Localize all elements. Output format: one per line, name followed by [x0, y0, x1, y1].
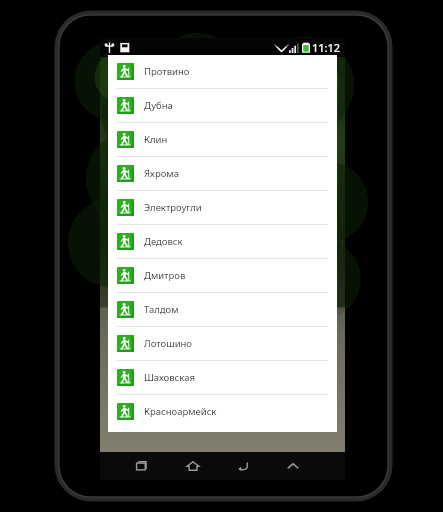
staticText: Яхрома	[144, 167, 179, 180]
button[interactable]: Show keyboard	[280, 453, 306, 479]
staticText: 11:12	[312, 40, 341, 55]
button[interactable]: Красноармейск	[108, 395, 337, 428]
button[interactable]: Яхрома	[108, 157, 337, 190]
button[interactable]: Электроугли	[108, 191, 337, 224]
staticText: Дубна	[144, 99, 173, 112]
staticText: Шаховская	[144, 371, 195, 384]
button[interactable]: Back	[230, 453, 256, 479]
staticText: Дедовск	[144, 235, 183, 248]
button[interactable]: Дедовск	[108, 225, 337, 258]
button[interactable]: Recents	[130, 453, 156, 479]
button[interactable]: Шаховская	[108, 361, 337, 394]
button[interactable]: Дубна	[108, 89, 337, 122]
staticText: Красноармейск	[144, 405, 217, 418]
button[interactable]: Клин	[108, 123, 337, 156]
button[interactable]: Home	[180, 453, 206, 479]
staticText: Дмитров	[144, 269, 186, 282]
staticText: Талдом	[144, 303, 179, 316]
button[interactable]: Дмитров	[108, 259, 337, 292]
staticText: Лотошино	[144, 337, 193, 350]
button[interactable]: Лотошино	[108, 327, 337, 360]
staticText: Клин	[144, 133, 168, 146]
staticText: Электроугли	[144, 201, 202, 214]
button[interactable]: Талдом	[108, 293, 337, 326]
button[interactable]: Протвино	[108, 55, 337, 88]
staticText: Протвино	[144, 65, 190, 78]
